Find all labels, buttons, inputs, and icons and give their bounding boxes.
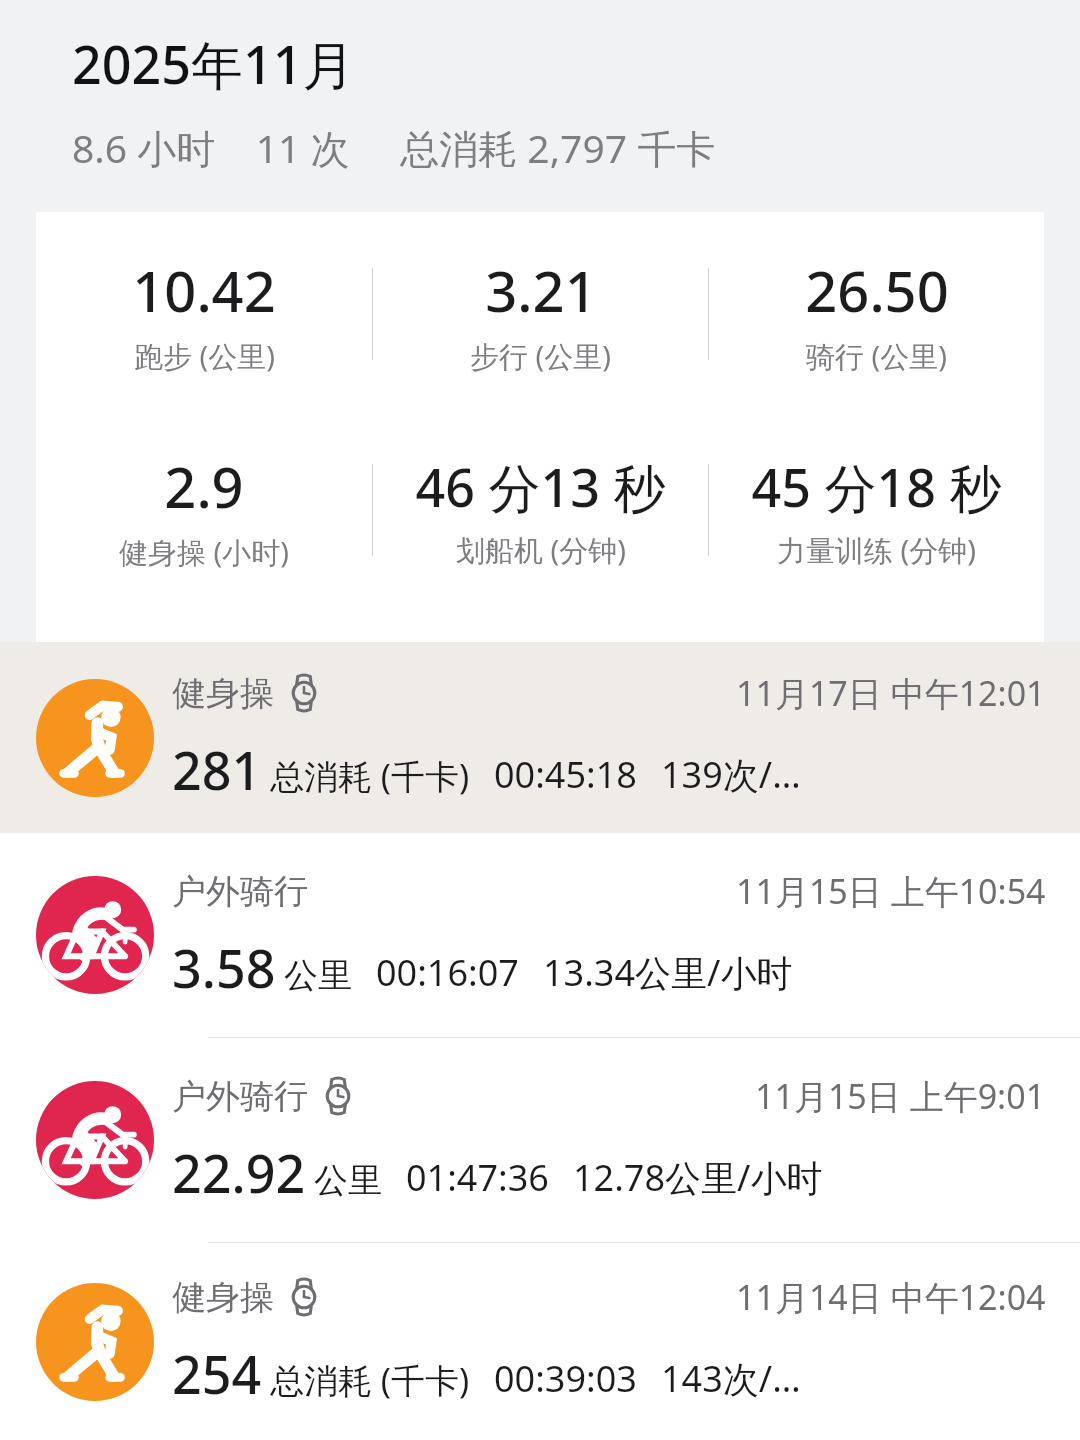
staticText: 11月17日 中午12:01 — [736, 670, 1046, 716]
button[interactable]: 10.42 — [36, 212, 1044, 642]
staticText: 281 — [172, 734, 262, 805]
staticText: 45 分18 秒 — [751, 451, 1002, 522]
staticText: 公里 — [284, 954, 352, 997]
staticText: 8.6 小时 11 次 总消耗 2,797 千卡 — [72, 121, 716, 174]
button[interactable]: 户外骑行 — [0, 833, 1080, 1037]
staticText: 骑行 (公里) — [806, 336, 947, 376]
staticText: 户外骑行 — [172, 1075, 308, 1118]
button[interactable]: 健身操 — [0, 1243, 1080, 1440]
staticText: 26.50 — [805, 252, 949, 328]
staticText: 12.78公里/小时 — [573, 1153, 823, 1202]
staticText: 22.92 — [172, 1137, 306, 1208]
staticText: 00:39:03 — [494, 1354, 637, 1403]
staticText: 3.21 — [485, 252, 597, 328]
button[interactable]: 健身操 — [0, 642, 1080, 833]
staticText: 11月15日 上午9:01 — [755, 1073, 1046, 1119]
staticText: 步行 (公里) — [470, 336, 611, 376]
staticText: 00:16:07 — [376, 948, 519, 997]
staticText: 3.58 — [172, 932, 276, 1003]
staticText: 00:45:18 — [494, 750, 637, 799]
staticText: 健身操 — [172, 672, 274, 715]
staticText: 2.9 — [164, 448, 244, 524]
staticText: 139次/… — [661, 750, 801, 799]
staticText: 总消耗 (千卡) — [270, 753, 470, 799]
staticText: 2025年11月 — [72, 28, 355, 99]
staticText: 划船机 (分钟) — [456, 530, 626, 570]
staticText: 254 — [172, 1338, 262, 1409]
staticText: 01:47:36 — [406, 1153, 549, 1202]
staticText: 健身操 (小时) — [119, 532, 289, 572]
staticText: 跑步 (公里) — [134, 336, 275, 376]
staticText: 11月14日 中午12:04 — [736, 1274, 1046, 1320]
staticText: 户外骑行 — [172, 870, 308, 913]
staticText: 总消耗 (千卡) — [270, 1357, 470, 1403]
staticText: 143次/… — [661, 1354, 801, 1403]
staticText: 公里 — [314, 1159, 382, 1202]
staticText: 健身操 — [172, 1276, 274, 1319]
button[interactable]: 户外骑行 — [0, 1038, 1080, 1242]
staticText: 力量训练 (分钟) — [777, 530, 976, 570]
staticText: 46 分13 秒 — [415, 451, 666, 522]
staticText: 10.42 — [132, 252, 276, 328]
staticText: 13.34公里/小时 — [543, 948, 793, 997]
staticText: 11月15日 上午10:54 — [736, 868, 1046, 914]
